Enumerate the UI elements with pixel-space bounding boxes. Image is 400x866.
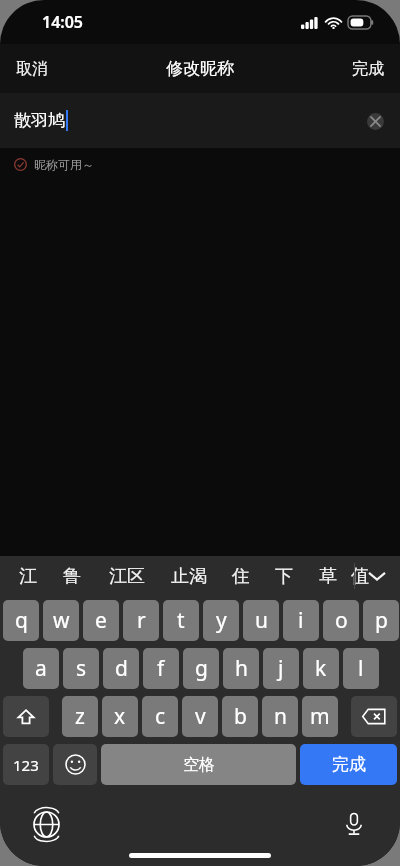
button[interactable]: m [302,696,338,737]
staticText: i [298,606,304,635]
staticText: 123 [13,755,39,775]
button[interactable]: g [183,648,219,689]
button[interactable]: 江区 [96,556,158,596]
staticText: c [155,702,166,731]
button[interactable]: Backspace [351,696,397,737]
staticText: 江 [19,565,37,588]
button[interactable]: a [23,648,59,689]
button[interactable]: 值 [350,556,370,596]
button[interactable]: Voice input [336,806,372,842]
button[interactable]: j [263,648,299,689]
button[interactable]: p [363,600,399,641]
button[interactable]: 完成 [300,744,397,785]
button[interactable]: 123 [3,744,49,785]
button[interactable]: 鲁 [48,556,96,596]
staticText: h [235,654,248,683]
button[interactable]: b [222,696,258,737]
staticText: 江区 [109,565,145,588]
button[interactable]: Hide candidates [354,556,400,596]
staticText: g [195,654,208,683]
button[interactable]: x [102,696,138,737]
staticText: 昵称可用～ [34,157,94,172]
button[interactable]: d [103,648,139,689]
staticText: q [15,606,28,635]
staticText: 完成 [352,59,384,79]
button[interactable]: Emoji [53,744,97,785]
staticText: z [75,702,85,731]
staticText: 取消 [16,59,48,79]
staticText: n [274,702,287,731]
staticText: 完成 [332,754,366,775]
staticText: o [335,606,348,635]
staticText: f [157,654,165,683]
button[interactable]: q [3,600,39,641]
staticText: 修改昵称 [166,58,234,79]
staticText: 鲁 [63,565,81,588]
staticText: j [278,654,284,683]
staticText: e [95,606,107,635]
button[interactable]: v [182,696,218,737]
staticText: 住 [232,565,250,588]
staticText: 值 [351,565,369,588]
staticText: b [234,702,247,731]
button[interactable]: 取消 [0,44,64,93]
button[interactable]: t [163,600,199,641]
staticText: r [137,606,146,635]
button[interactable]: 止渴 [158,556,220,596]
button[interactable]: c [142,696,178,737]
button[interactable]: Shift [3,696,49,737]
button[interactable]: h [223,648,259,689]
staticText: m [310,702,330,731]
staticText: s [76,654,87,683]
staticText: x [114,702,126,731]
staticText: k [315,654,327,683]
staticText: 草 [319,565,337,588]
staticText: y [216,606,227,635]
button[interactable]: 草 [306,556,350,596]
button[interactable]: 散羽鸠 [0,93,400,148]
button[interactable]: k [303,648,339,689]
staticText: 止渴 [171,565,207,588]
button[interactable]: s [63,648,99,689]
button[interactable]: i [283,600,319,641]
button[interactable]: Change keyboard language [28,806,64,842]
button[interactable]: w [43,600,79,641]
staticText: v [195,702,206,731]
button[interactable]: e [83,600,119,641]
staticText: 散羽鸠 [14,110,65,131]
button[interactable]: u [243,600,279,641]
button[interactable]: 住 [220,556,262,596]
staticText: 下 [275,565,293,588]
button[interactable]: o [323,600,359,641]
staticText: u [255,606,268,635]
staticText: 空格 [183,755,215,775]
staticText: w [53,606,70,635]
button[interactable]: z [62,696,98,737]
button[interactable]: 空格 [101,744,296,785]
button[interactable]: f [143,648,179,689]
staticText: l [358,654,364,683]
button[interactable]: Clear text [360,106,390,136]
button[interactable]: y [203,600,239,641]
staticText: a [35,654,47,683]
button[interactable]: 完成 [336,44,400,93]
button[interactable]: r [123,600,159,641]
button[interactable]: 江 [8,556,48,596]
button[interactable]: 下 [262,556,306,596]
staticText: 14:05 [42,11,84,33]
button[interactable]: l [343,648,379,689]
button[interactable]: n [262,696,298,737]
staticText: p [375,606,388,635]
staticText: d [115,654,128,683]
staticText: t [177,606,185,635]
